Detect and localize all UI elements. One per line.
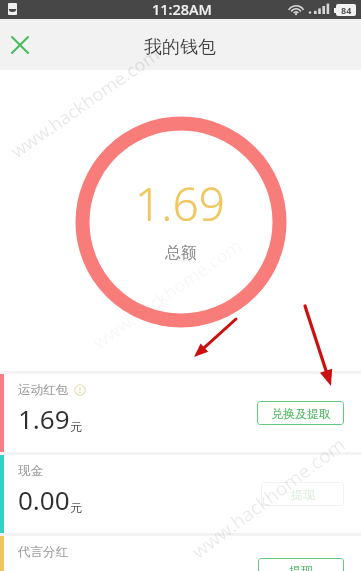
staticText: www.hackhome.com [186, 432, 350, 564]
button[interactable]: 提现 [258, 558, 344, 571]
staticText: 1.69 [18, 401, 70, 436]
button[interactable]: 兑换及提取 [257, 401, 344, 425]
button[interactable]: 提现 [261, 482, 344, 506]
staticText: 元 [70, 419, 82, 434]
button[interactable]: 现金 [0, 455, 361, 533]
button[interactable]: 运动红包 [0, 374, 361, 452]
staticText: 1.69 [135, 172, 226, 235]
staticText: 84 [341, 4, 352, 16]
staticText: 提现 [289, 563, 313, 571]
staticText: www.hackhome.com [88, 233, 247, 355]
staticText: 11:28AM [152, 0, 212, 18]
staticText: 总额 [165, 243, 197, 263]
staticText: 运动红包 [18, 382, 68, 398]
button[interactable]: 代言分红 [0, 536, 361, 571]
staticText: 0.00 [18, 482, 70, 517]
staticText: 我的钱包 [144, 36, 216, 59]
staticText: 代言分红 [18, 544, 68, 560]
staticText: 兑换及提取 [271, 406, 331, 421]
staticText: 元 [70, 500, 82, 515]
staticText: 现金 [18, 463, 43, 479]
button[interactable]: Close [0, 25, 40, 65]
staticText: 提现 [291, 487, 315, 502]
staticText: www.hackhome.com [6, 42, 165, 164]
